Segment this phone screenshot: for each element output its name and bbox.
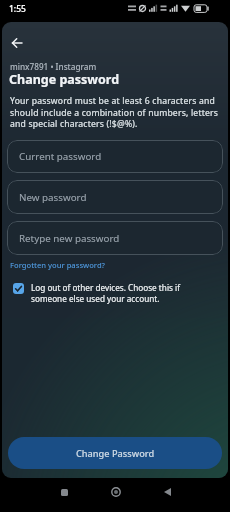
button[interactable]: Forgotten your password? <box>10 260 106 270</box>
staticText: Your password must be at least 6 charact… <box>10 95 219 129</box>
button[interactable]: Retype new password <box>7 221 223 255</box>
button[interactable]: New password <box>7 180 223 214</box>
button[interactable]: Change Password <box>8 437 222 469</box>
button[interactable] <box>6 33 28 53</box>
staticText: New password <box>19 191 87 204</box>
staticText: minx7891 • Instagram <box>10 61 97 72</box>
button[interactable]: Current password <box>7 140 223 173</box>
staticText: Log out of other devices. Choose this if… <box>31 282 180 304</box>
button[interactable] <box>54 482 74 502</box>
staticText: Retype new password <box>19 232 120 245</box>
button[interactable]: Log out of other devices. Choose this if… <box>8 277 222 309</box>
button[interactable] <box>157 482 177 502</box>
staticText: 1:55 <box>9 3 26 15</box>
staticText: Current password <box>19 150 102 163</box>
staticText: Change password <box>9 71 120 88</box>
button[interactable] <box>106 482 126 502</box>
staticText: Change Password <box>76 447 155 460</box>
